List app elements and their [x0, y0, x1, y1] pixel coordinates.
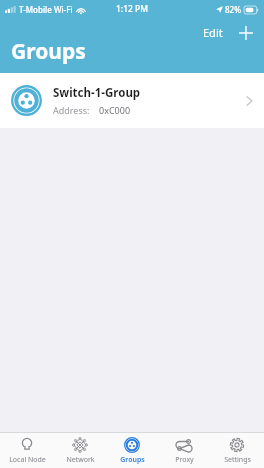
- staticText: Settings: [224, 455, 251, 465]
- button[interactable]: Local Node: [2, 434, 52, 468]
- staticText: Groups: [11, 37, 86, 66]
- button[interactable]: Groups: [107, 434, 157, 468]
- staticText: T-Mobile Wi-Fi: [19, 4, 73, 15]
- staticText: 0xC000: [99, 104, 131, 116]
- staticText: Network: [66, 455, 95, 465]
- staticText: Address:: [53, 104, 90, 116]
- button[interactable]: Edit: [197, 21, 229, 44]
- staticText: 1:12 PM: [116, 3, 149, 15]
- staticText: Switch-1-Group: [53, 85, 141, 101]
- staticText: Groups: [120, 455, 145, 465]
- button[interactable]: Switch-1-Group: [0, 73, 264, 128]
- button[interactable]: Add group: [235, 22, 257, 44]
- button[interactable]: Proxy: [159, 434, 209, 468]
- staticText: 82%: [225, 4, 241, 15]
- button[interactable]: Network: [55, 434, 105, 468]
- staticText: Edit: [203, 25, 223, 40]
- button[interactable]: Settings: [212, 434, 262, 468]
- staticText: Proxy: [175, 455, 194, 465]
- staticText: Local Node: [9, 455, 46, 465]
